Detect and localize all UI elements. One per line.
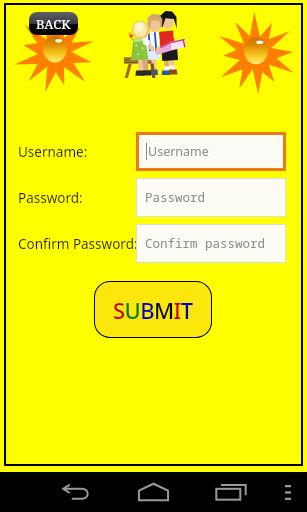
button[interactable]: Password bbox=[137, 179, 285, 216]
staticText: Username bbox=[148, 143, 209, 160]
staticText: Username: bbox=[18, 143, 88, 161]
button[interactable]: Recents bbox=[207, 472, 255, 512]
staticText: Password: bbox=[18, 189, 83, 207]
staticText: Password bbox=[145, 189, 206, 206]
button[interactable]: Home bbox=[129, 472, 177, 512]
staticText: Confirm Password: bbox=[18, 235, 136, 253]
button[interactable]: More options bbox=[268, 472, 307, 512]
staticText: BACK bbox=[36, 15, 71, 33]
button[interactable]: Back bbox=[52, 472, 100, 512]
staticText: SUBMIT bbox=[113, 295, 193, 325]
button[interactable]: SUBMIT bbox=[94, 281, 212, 338]
button[interactable]: Username bbox=[139, 135, 283, 168]
staticText: Confirm password bbox=[145, 235, 266, 252]
button[interactable]: Confirm password bbox=[137, 225, 285, 262]
button[interactable]: BACK bbox=[29, 12, 78, 35]
